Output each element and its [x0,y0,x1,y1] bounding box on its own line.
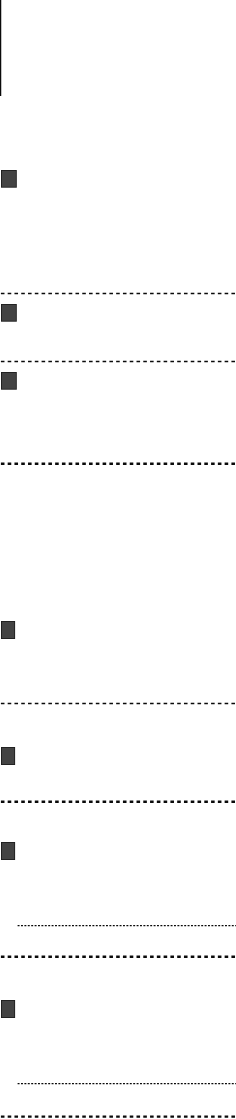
button[interactable]: Section five [0,706,236,801]
button[interactable]: Section seven [0,960,236,1116]
button[interactable]: Section two [0,296,236,361]
button[interactable]: Section three [0,364,236,463]
button[interactable]: Section one [0,160,236,293]
button[interactable]: Section six [0,804,236,956]
button[interactable]: Section four [0,610,236,703]
